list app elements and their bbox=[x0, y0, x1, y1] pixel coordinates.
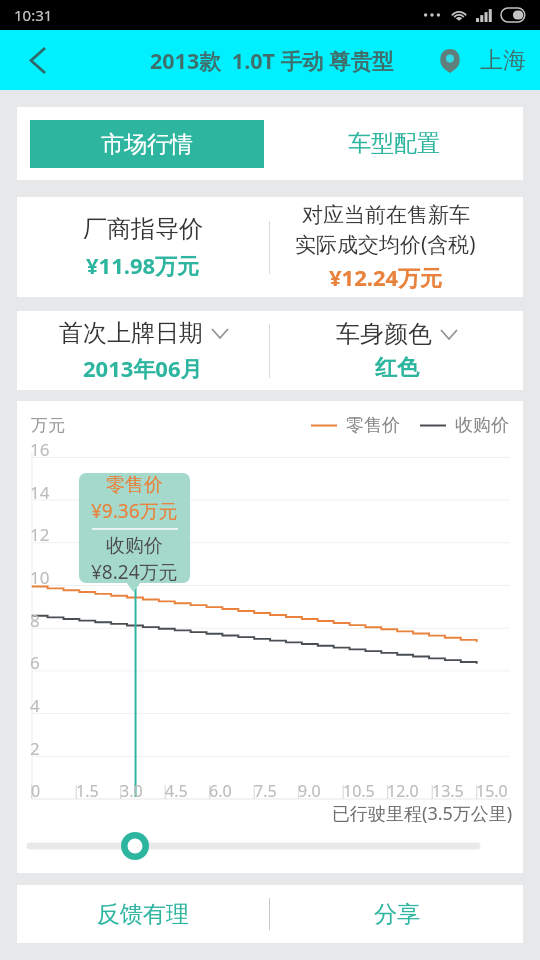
staticText: ¥8.24万元 bbox=[91, 559, 178, 583]
staticText: 0 bbox=[31, 780, 41, 802]
staticText: 10.5 bbox=[343, 780, 375, 802]
staticText: 零售价 bbox=[346, 414, 400, 437]
staticText: 收购价 bbox=[106, 534, 163, 558]
staticText: 2013款 1.0T 手动 尊贵型 bbox=[150, 46, 394, 75]
staticText: 8 bbox=[30, 609, 40, 632]
staticText: 实际成交均价(含税) bbox=[295, 230, 476, 259]
button[interactable]: Mileage slider bbox=[17, 830, 523, 862]
staticText: 6.0 bbox=[209, 780, 232, 802]
staticText: 10 bbox=[30, 566, 50, 589]
staticText: 10:31 bbox=[14, 5, 53, 25]
staticText: 红色 bbox=[375, 354, 419, 382]
staticText: 对应当前在售新车 bbox=[302, 202, 470, 228]
button[interactable]: 反馈有理 bbox=[17, 885, 269, 943]
staticText: 厂商指导价 bbox=[83, 214, 203, 244]
staticText: 6 bbox=[30, 651, 40, 674]
staticText: ¥12.24万元 bbox=[329, 262, 443, 292]
staticText: 首次上牌日期 bbox=[59, 318, 203, 348]
button[interactable]: Back bbox=[0, 30, 74, 90]
staticText: 反馈有理 bbox=[97, 900, 189, 929]
button[interactable]: 市场行情 bbox=[30, 120, 264, 168]
staticText: 车型配置 bbox=[348, 129, 440, 158]
staticText: ¥11.98万元 bbox=[86, 250, 200, 280]
staticText: ¥9.36万元 bbox=[91, 498, 178, 524]
staticText: 2013年06月 bbox=[83, 353, 203, 383]
staticText: 12 bbox=[30, 523, 50, 546]
button[interactable]: 首次上牌日期 bbox=[17, 311, 269, 390]
staticText: 分享 bbox=[374, 900, 420, 929]
staticText: 1.5 bbox=[76, 780, 99, 802]
button[interactable]: 车身颜色 bbox=[270, 311, 523, 390]
staticText: 4.5 bbox=[165, 780, 188, 802]
staticText: 上海 bbox=[480, 46, 526, 75]
staticText: 收购价 bbox=[455, 414, 509, 437]
staticText: 万元 bbox=[31, 415, 65, 436]
staticText: 2 bbox=[30, 737, 40, 760]
button[interactable]: 分享 bbox=[270, 885, 523, 943]
staticText: 9.0 bbox=[298, 780, 321, 802]
staticText: 市场行情 bbox=[101, 130, 193, 159]
button[interactable]: 上海 bbox=[440, 46, 526, 75]
staticText: 3.0 bbox=[120, 780, 143, 802]
button[interactable]: 车型配置 bbox=[264, 107, 523, 180]
staticText: 15.0 bbox=[476, 780, 508, 802]
staticText: 7.5 bbox=[254, 780, 277, 802]
staticText: 车身颜色 bbox=[336, 319, 432, 349]
staticText: 零售价 bbox=[106, 473, 163, 497]
staticText: 已行驶里程(3.5万公里) bbox=[332, 801, 513, 826]
staticText: 13.5 bbox=[432, 780, 464, 802]
staticText: 14 bbox=[30, 481, 50, 504]
staticText: 16 bbox=[30, 438, 50, 461]
staticText: 12.0 bbox=[387, 780, 419, 802]
staticText: 4 bbox=[30, 694, 40, 717]
